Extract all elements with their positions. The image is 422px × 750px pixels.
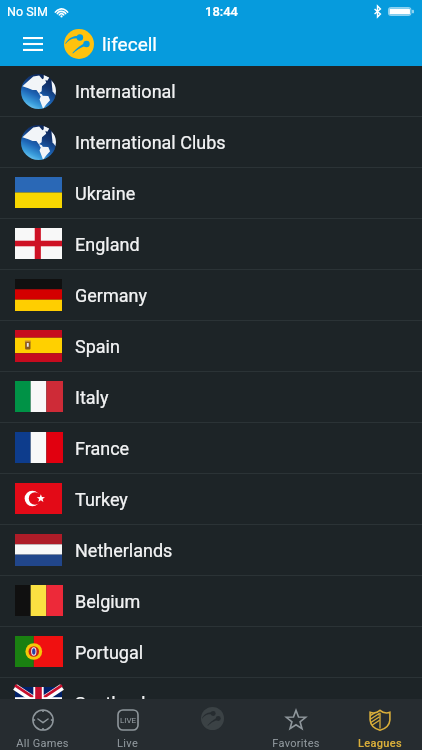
staticText: France — [75, 438, 130, 459]
staticText: Spain — [75, 336, 120, 357]
staticText: Belgium — [75, 591, 141, 612]
staticText: Germany — [75, 285, 147, 306]
staticText: Italy — [75, 387, 109, 408]
staticText: Turkey — [75, 489, 128, 510]
staticText: Netherlands — [75, 540, 173, 561]
staticText: No SIM — [7, 4, 48, 19]
staticText: Portugal — [75, 642, 144, 663]
button[interactable]: France — [0, 423, 422, 474]
staticText: England — [75, 234, 140, 255]
staticText: International Clubs — [75, 132, 226, 153]
button[interactable]: International — [0, 66, 422, 117]
staticText: All Games — [16, 737, 69, 750]
button[interactable]: Spain — [0, 321, 422, 372]
staticText: Leagues — [358, 737, 402, 750]
button[interactable]: Ukraine — [0, 168, 422, 219]
staticText: 18:44 — [205, 4, 238, 19]
button[interactable]: Scotland — [0, 678, 422, 729]
button[interactable]: lifecell — [170, 699, 254, 750]
button[interactable]: International Clubs — [0, 117, 422, 168]
staticText: Live — [117, 737, 139, 750]
staticText: International — [75, 81, 176, 102]
staticText: Favorites — [272, 737, 320, 750]
button[interactable]: All Games — [0, 699, 85, 750]
button[interactable]: Leagues — [338, 699, 422, 750]
button[interactable]: Germany — [0, 270, 422, 321]
staticText: LIVE — [120, 716, 137, 725]
button[interactable]: Menu — [18, 27, 48, 61]
button[interactable]: Turkey — [0, 474, 422, 525]
button[interactable]: LIVE — [85, 699, 170, 750]
button[interactable]: Favorites — [254, 699, 338, 750]
button[interactable]: Italy — [0, 372, 422, 423]
button[interactable]: England — [0, 219, 422, 270]
staticText: Scotland — [75, 693, 146, 714]
button[interactable]: Netherlands — [0, 525, 422, 576]
staticText: lifecell — [102, 33, 157, 55]
button[interactable]: Belgium — [0, 576, 422, 627]
staticText: Ukraine — [75, 183, 136, 204]
button[interactable]: Portugal — [0, 627, 422, 678]
